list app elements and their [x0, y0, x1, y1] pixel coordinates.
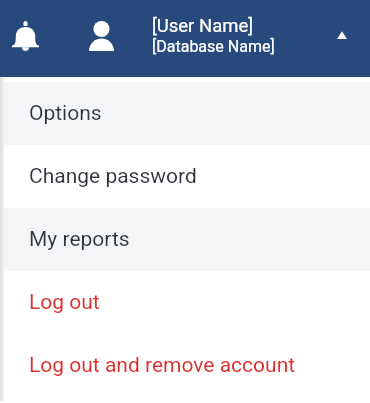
button[interactable]: Notifications [4, 0, 47, 71]
staticText: Log out and remove account [29, 353, 296, 378]
staticText: Log out [29, 290, 100, 315]
button[interactable]: My reports [4, 208, 370, 271]
button[interactable]: [User Name] [152, 15, 322, 56]
staticText: [Database Name] [152, 37, 275, 56]
staticText: [User Name] [152, 15, 254, 37]
staticText: Change password [29, 164, 197, 189]
button[interactable]: Log out [4, 271, 370, 334]
button[interactable]: Change password [4, 145, 370, 208]
button[interactable]: Account [79, 0, 124, 71]
button[interactable]: Log out and remove account [4, 334, 370, 397]
staticText: My reports [29, 227, 130, 252]
button[interactable]: Collapse account menu [319, 0, 364, 69]
button[interactable]: Options [4, 82, 370, 145]
staticText: Options [29, 101, 102, 126]
